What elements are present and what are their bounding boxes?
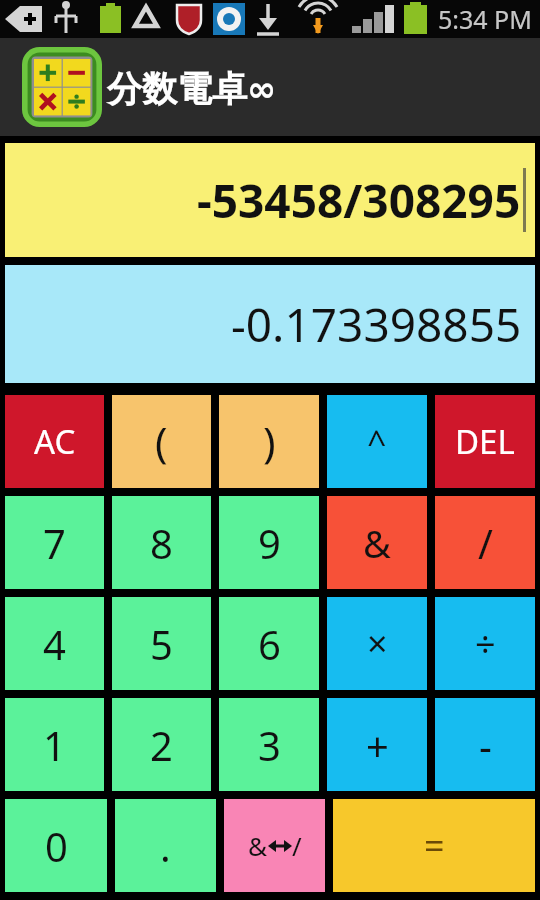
staticText: (	[155, 413, 168, 470]
button[interactable]: =	[333, 799, 535, 892]
button[interactable]: -0.173398855	[5, 265, 535, 383]
staticText: =	[424, 821, 445, 870]
staticText: ÷	[475, 619, 496, 668]
button[interactable]: 2	[112, 698, 211, 791]
button[interactable]: 4	[5, 597, 104, 690]
button[interactable]: Toggle fraction and decimal	[224, 799, 325, 892]
staticText: DEL	[455, 419, 515, 464]
button[interactable]: -53458/308295	[5, 143, 535, 257]
staticText: AC	[34, 419, 76, 464]
staticText: /	[478, 516, 493, 570]
other: App icon	[22, 47, 102, 127]
staticText: 5	[150, 617, 173, 671]
staticText: -	[479, 718, 492, 772]
staticText: .	[160, 819, 171, 873]
staticText: 2	[150, 718, 173, 772]
staticText: +	[366, 718, 389, 772]
staticText: 1	[43, 718, 66, 772]
button[interactable]: DEL	[435, 395, 535, 488]
staticText: 8	[150, 516, 173, 570]
staticText: 分数電卓∞	[107, 67, 277, 111]
button[interactable]: -	[435, 698, 535, 791]
button[interactable]: 3	[219, 698, 319, 791]
button[interactable]: &	[327, 496, 427, 589]
staticText: -53458/308295	[197, 169, 521, 232]
staticText: ^	[367, 419, 387, 465]
button[interactable]: +	[327, 698, 427, 791]
staticText: 9	[258, 516, 281, 570]
staticText: 4	[43, 617, 66, 671]
button[interactable]: AC	[5, 395, 104, 488]
button[interactable]: 6	[219, 597, 319, 690]
button[interactable]: 8	[112, 496, 211, 589]
staticText: &	[363, 517, 391, 569]
staticText: 5:34 PM	[438, 2, 532, 36]
button[interactable]: 9	[219, 496, 319, 589]
button[interactable]: (	[112, 395, 211, 488]
staticText: /	[292, 828, 302, 863]
button[interactable]: ^	[327, 395, 427, 488]
staticText: 7	[43, 516, 66, 570]
staticText: -0.173398855	[231, 293, 522, 356]
button[interactable]: ×	[327, 597, 427, 690]
button[interactable]: /	[435, 496, 535, 589]
button[interactable]: 0	[5, 799, 107, 892]
staticText: 6	[258, 617, 281, 671]
button[interactable]: 5	[112, 597, 211, 690]
button[interactable]: ÷	[435, 597, 535, 690]
staticText: 3	[258, 718, 281, 772]
staticText: &	[248, 828, 268, 863]
button[interactable]: 1	[5, 698, 104, 791]
staticText: 0	[45, 819, 68, 873]
button[interactable]: 7	[5, 496, 104, 589]
staticText: ×	[367, 619, 388, 668]
button[interactable]: .	[115, 799, 216, 892]
button[interactable]: )	[219, 395, 319, 488]
staticText: )	[263, 413, 276, 470]
